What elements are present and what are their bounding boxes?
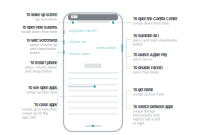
staticText: press five times	[133, 70, 159, 74]
button[interactable]: To summon Siri	[133, 34, 185, 46]
staticText: To wake up screen	[26, 13, 57, 17]
staticText: swipe the bar horizontally from right to…	[133, 109, 160, 125]
staticText: To switch between apps	[133, 105, 173, 109]
staticText: To get home	[133, 88, 153, 92]
staticText: press twice	[133, 57, 152, 61]
staticText: To open the Control Center	[133, 17, 178, 21]
button[interactable]: To open notifications	[5, 25, 57, 34]
staticText: To launch Apple Pay	[133, 53, 167, 57]
staticText: swipe down from here	[21, 30, 57, 34]
staticText: To disable FaceID	[133, 66, 163, 70]
staticText: volume down	[68, 52, 90, 56]
staticText: sleep button	[96, 46, 116, 50]
staticText: swipe up from here	[133, 92, 164, 96]
staticText: tap anywhere	[35, 17, 57, 21]
button[interactable]: To take screenshot	[5, 38, 57, 55]
staticText: ring/silent switch	[68, 29, 96, 33]
staticText: To open notifications	[22, 25, 57, 30]
staticText: To restart phone	[30, 61, 57, 65]
staticText: To close apps	[34, 103, 57, 107]
button[interactable]: To wake up screen	[5, 13, 57, 21]
staticText: press volume down and sleep button	[25, 65, 57, 73]
button[interactable]: To disable FaceID	[133, 66, 185, 74]
staticText: press and hold sleep/wake button	[133, 38, 177, 46]
staticText: To summon Siri	[133, 34, 159, 38]
staticText: volume up	[68, 40, 85, 44]
staticText: swipe up from here	[26, 90, 57, 94]
button[interactable]: To launch Apple Pay	[133, 53, 185, 61]
button[interactable]: To switch between apps	[133, 105, 185, 125]
staticText: To take screenshot	[26, 38, 57, 43]
button[interactable]: To close apps	[5, 103, 57, 119]
button[interactable]: To restart phone	[5, 61, 57, 73]
staticText: swipe up to here then swipe up on the ap…	[22, 107, 57, 119]
button[interactable]: To get home	[133, 88, 185, 96]
button[interactable]: To open the Control Center	[133, 17, 185, 25]
staticText: swipe down from here	[133, 21, 169, 25]
button[interactable]: To see open apps	[5, 86, 57, 94]
staticText: To see open apps	[28, 86, 57, 90]
staticText: press volume up and sleep/wake button	[30, 43, 57, 55]
